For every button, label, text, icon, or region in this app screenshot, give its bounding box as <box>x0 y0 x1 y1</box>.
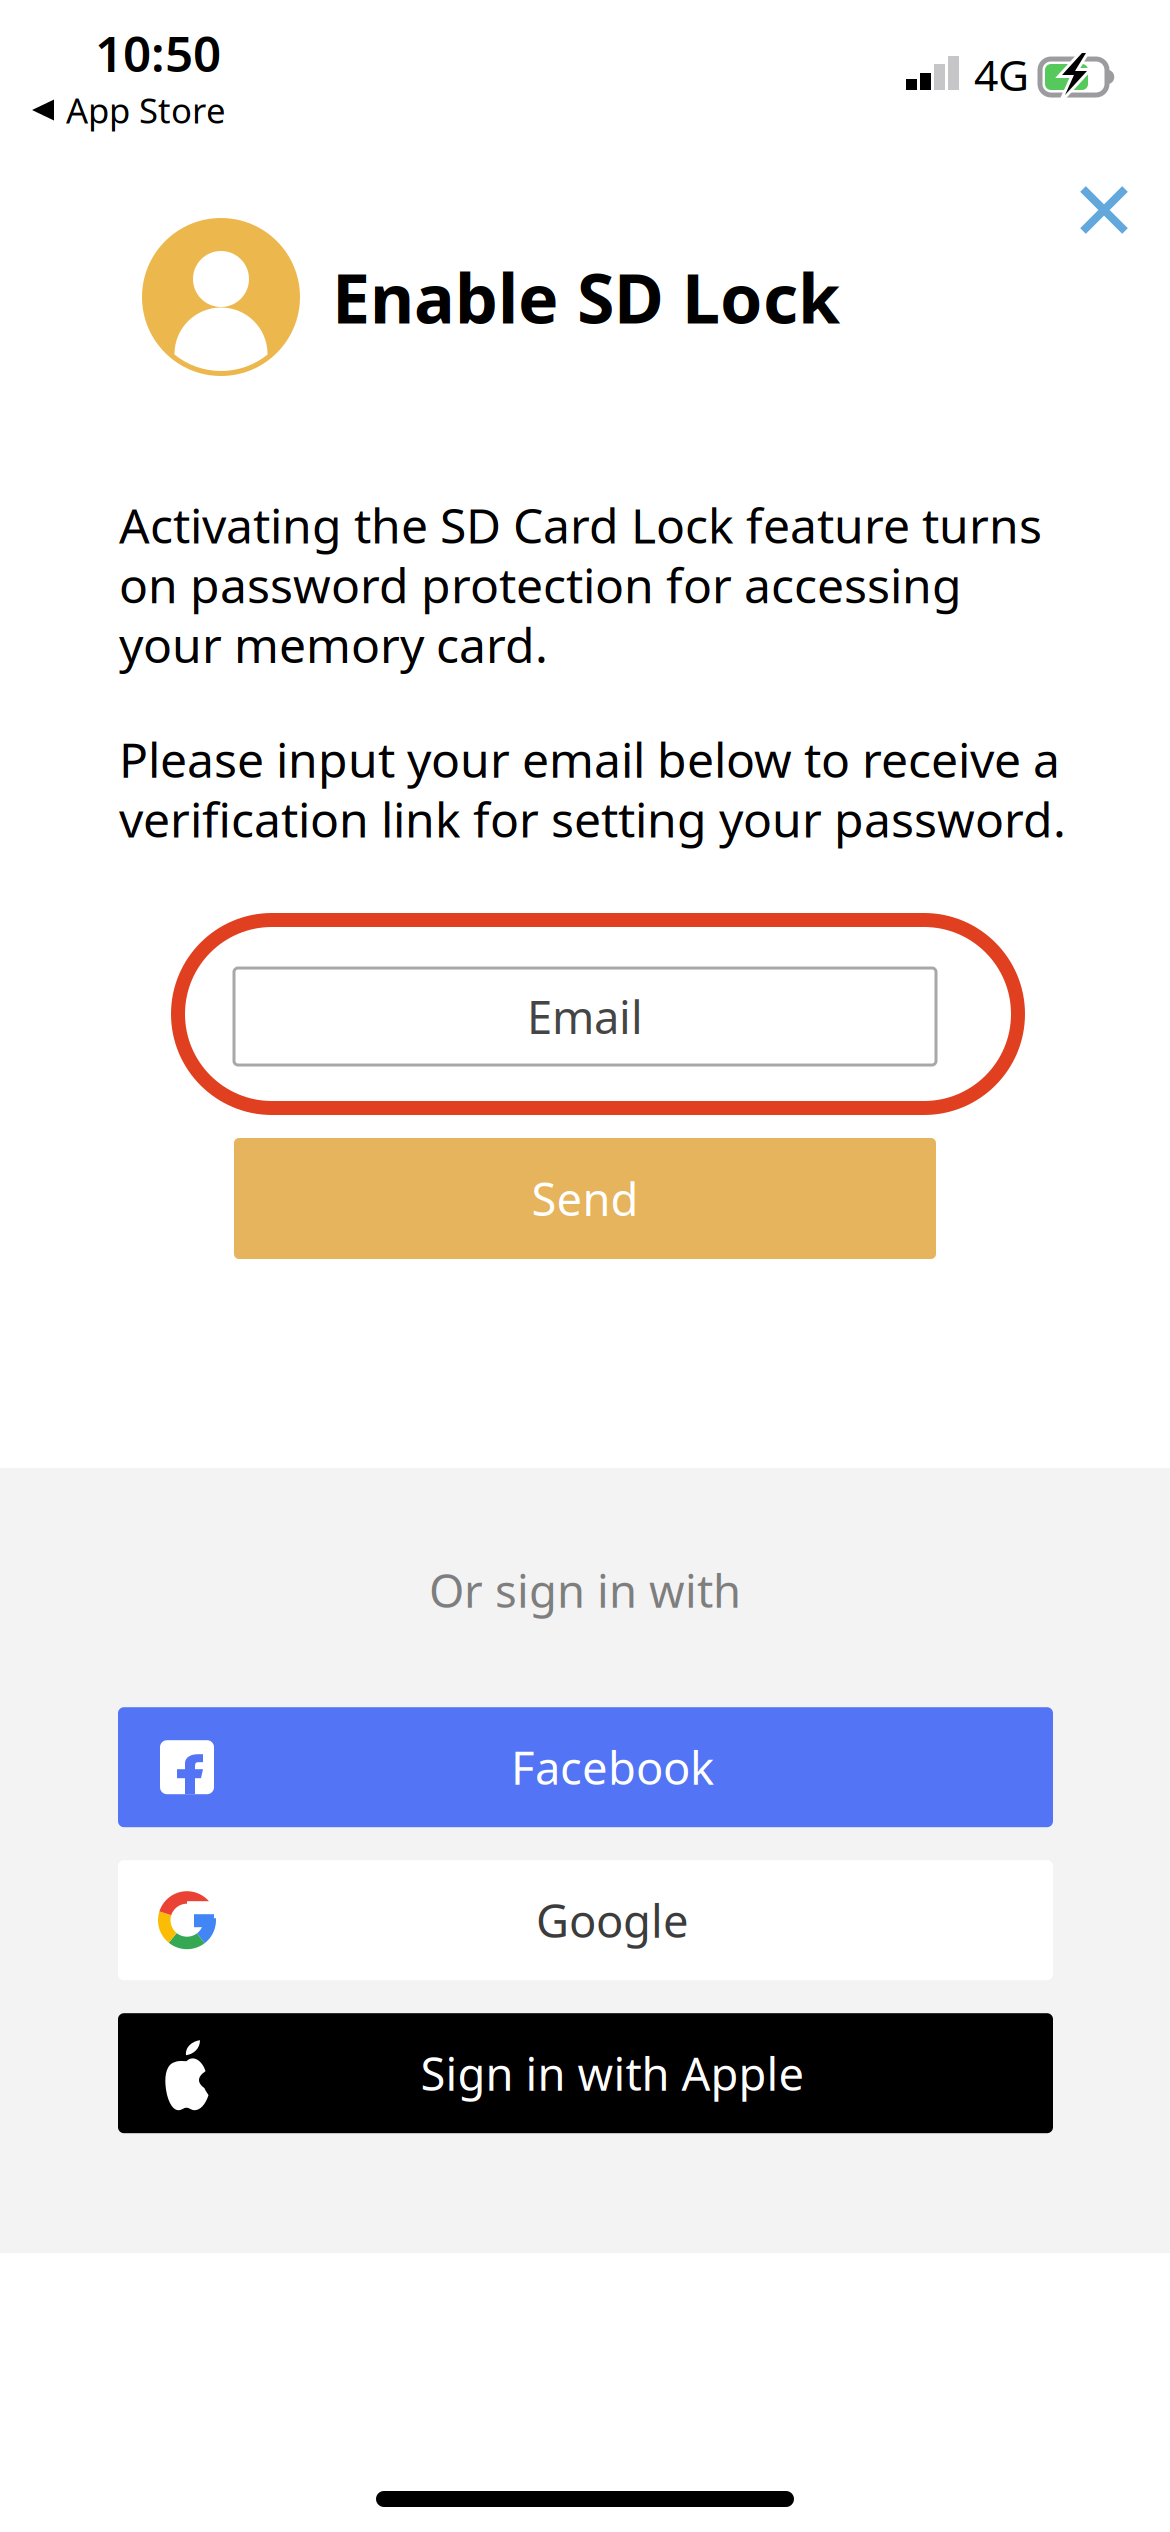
button[interactable]: App Store <box>32 87 226 133</box>
staticText: 10:50 <box>95 20 221 85</box>
button[interactable]: Close <box>1061 167 1147 253</box>
staticText: Email <box>527 986 643 1047</box>
staticText: App Store <box>66 87 226 133</box>
staticText: verification link for setting your passw… <box>119 787 1066 851</box>
button[interactable]: Email <box>234 968 936 1065</box>
staticText: on password protection for accessing <box>119 553 962 616</box>
staticText: your memory card. <box>119 612 548 676</box>
staticText: Sign in with Apple <box>420 2043 804 2103</box>
staticText: Send <box>531 1168 638 1229</box>
staticText: Or sign in with <box>429 1560 741 1620</box>
button[interactable]: Send <box>234 1138 936 1259</box>
staticText: Enable SD Lock <box>332 252 840 342</box>
staticText: Facebook <box>511 1737 714 1797</box>
staticText: Activating the SD Card Lock feature turn… <box>119 493 1042 557</box>
button[interactable]: Sign in with Apple <box>118 2013 1053 2133</box>
button[interactable]: Google <box>118 1860 1053 1980</box>
staticText: Google <box>536 1890 689 1950</box>
staticText: Please input your email below to receive… <box>119 727 1060 791</box>
staticText: 4G <box>974 46 1029 103</box>
button[interactable]: Facebook <box>118 1707 1053 1827</box>
